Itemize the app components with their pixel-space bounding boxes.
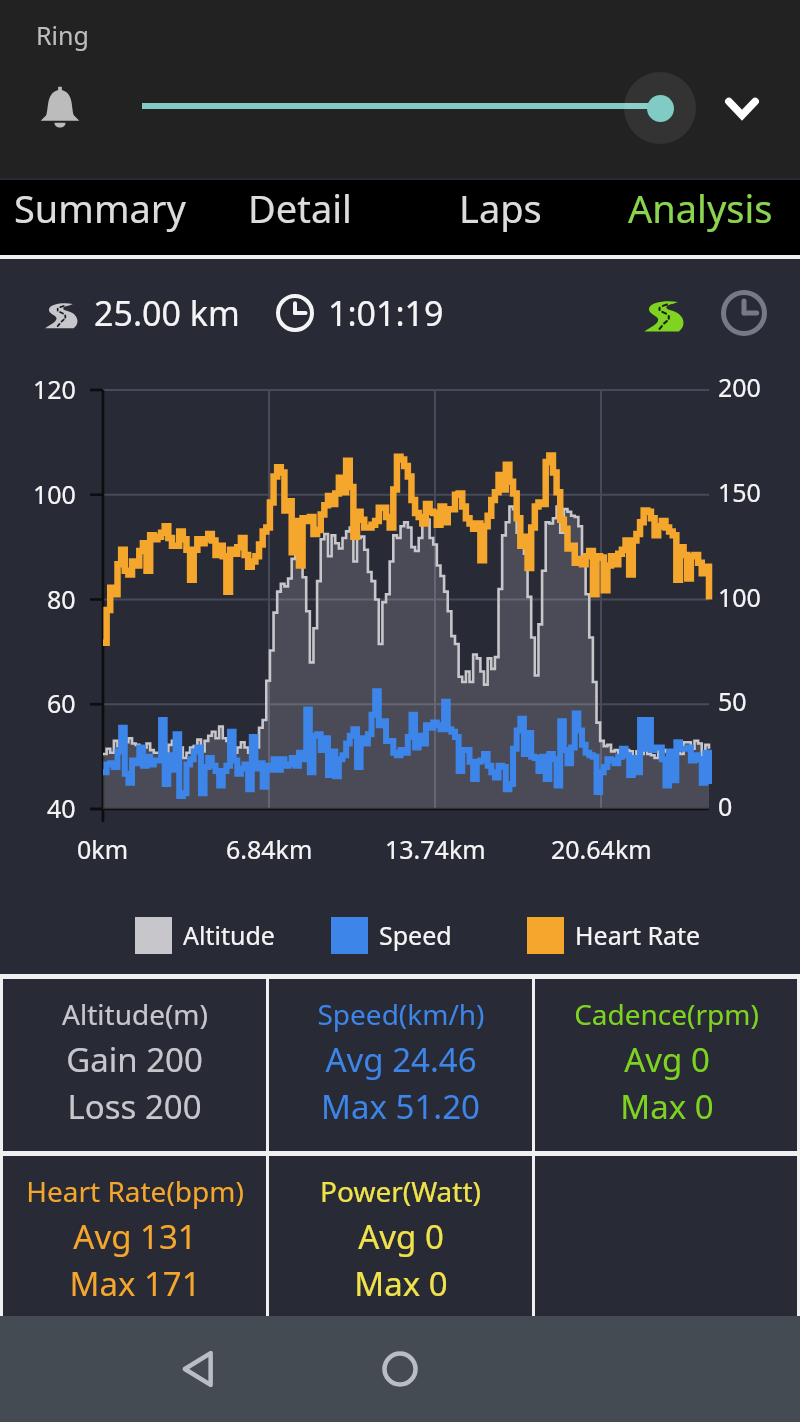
button[interactable]: Detail bbox=[200, 180, 400, 255]
staticText: 200 bbox=[718, 370, 761, 404]
staticText: Detail bbox=[248, 182, 352, 234]
button[interactable]: Ringer mode bbox=[24, 71, 96, 143]
staticText: Speed(km/h) bbox=[317, 995, 485, 1033]
staticText: Avg 0 bbox=[358, 1214, 444, 1259]
button[interactable]: Altitude bbox=[135, 904, 275, 966]
staticText: 100 bbox=[718, 580, 761, 614]
button[interactable]: Power(Watt) bbox=[269, 1156, 532, 1328]
button[interactable]: Analysis bbox=[600, 180, 800, 255]
button[interactable]: Back bbox=[154, 1316, 246, 1422]
staticText: Heart Rate(bpm) bbox=[26, 1172, 244, 1210]
staticText: Speed bbox=[379, 918, 452, 952]
staticText: 150 bbox=[718, 475, 761, 509]
staticText: Altitude bbox=[183, 918, 275, 952]
button[interactable]: Time graph bbox=[712, 282, 776, 344]
staticText: Summary bbox=[14, 182, 186, 234]
staticText: Avg 24.46 bbox=[325, 1037, 477, 1082]
staticText: Power(Watt) bbox=[320, 1172, 481, 1210]
button[interactable]: Cadence(rpm) bbox=[535, 979, 798, 1151]
staticText: 1:01:19 bbox=[328, 290, 444, 336]
staticText: 60 bbox=[47, 686, 76, 720]
button[interactable]: Laps bbox=[400, 180, 600, 255]
button[interactable]: Ring volume bbox=[624, 72, 696, 144]
button[interactable]: Summary bbox=[0, 180, 200, 255]
staticText: Cadence(rpm) bbox=[574, 995, 759, 1033]
staticText: 120 bbox=[33, 372, 76, 406]
staticText: Max 0 bbox=[620, 1084, 714, 1129]
button[interactable]: Heart Rate(bpm) bbox=[3, 1156, 266, 1328]
staticText: 40 bbox=[47, 791, 76, 825]
staticText: 13.74km bbox=[385, 832, 486, 866]
staticText: 25.00 km bbox=[94, 290, 240, 336]
staticText: Avg 131 bbox=[73, 1214, 197, 1259]
button[interactable]: Expand volume panel bbox=[708, 74, 776, 142]
button[interactable]: Altitude(m) bbox=[3, 979, 266, 1151]
staticText: 6.84km bbox=[226, 832, 313, 866]
staticText: Max 171 bbox=[69, 1261, 201, 1306]
staticText: Gain 200 bbox=[66, 1037, 203, 1082]
staticText: 50 bbox=[718, 684, 747, 718]
staticText: Laps bbox=[459, 182, 542, 234]
button[interactable]: Distance graph bbox=[634, 282, 698, 344]
staticText: Analysis bbox=[628, 182, 773, 234]
staticText: Max 0 bbox=[354, 1261, 448, 1306]
staticText: Loss 200 bbox=[67, 1084, 202, 1129]
staticText: Heart Rate bbox=[575, 918, 701, 952]
staticText: 20.64km bbox=[551, 832, 652, 866]
button[interactable]: Speed(km/h) bbox=[269, 979, 532, 1151]
button[interactable]: Heart Rate bbox=[527, 904, 701, 966]
staticText: 0km bbox=[77, 832, 129, 866]
staticText: 80 bbox=[47, 582, 76, 616]
staticText: Ring bbox=[36, 18, 89, 52]
button[interactable]: Home bbox=[354, 1316, 446, 1422]
staticText: 100 bbox=[33, 477, 76, 511]
staticText: Max 51.20 bbox=[321, 1084, 480, 1129]
staticText: Avg 0 bbox=[624, 1037, 710, 1082]
staticText: 0 bbox=[718, 789, 733, 823]
button[interactable]: Speed bbox=[331, 904, 452, 966]
staticText: Altitude(m) bbox=[62, 995, 208, 1033]
